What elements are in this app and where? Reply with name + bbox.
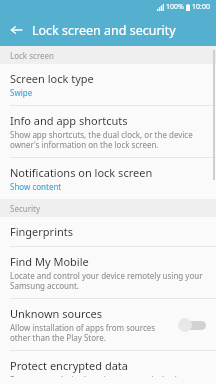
staticText: Lock screen	[10, 50, 55, 61]
staticText: 100%	[166, 2, 184, 12]
button[interactable]: Notifications on lock screen	[0, 158, 216, 199]
button[interactable]: Info and app shortcuts	[0, 106, 216, 157]
button[interactable]: Back	[0, 14, 32, 46]
staticText: Locate and control your device remotely …	[10, 270, 203, 291]
staticText: Unknown sources	[10, 306, 103, 321]
button[interactable]: Fingerprints	[0, 217, 216, 246]
staticText: Find My Mobile	[10, 254, 89, 269]
staticText: Screen lock type	[10, 71, 94, 86]
staticText: Fingerprints	[10, 224, 74, 239]
staticText: Lock screen and security	[32, 22, 176, 39]
button[interactable]: Unknown sources	[0, 299, 216, 350]
staticText: Swipe	[10, 87, 33, 98]
staticText: Protect your device by using a screen lo…	[10, 374, 190, 377]
staticText: 10:00	[192, 2, 210, 12]
staticText: Info and app shortcuts	[10, 113, 128, 128]
staticText: Allow installation of apps from sources …	[10, 322, 156, 343]
staticText: Security	[10, 203, 41, 214]
staticText: Notifications on lock screen	[10, 165, 153, 180]
button[interactable]: Unknown sources toggle	[178, 316, 208, 334]
button[interactable]: Find My Mobile	[0, 247, 216, 298]
staticText: Protect encrypted data	[10, 358, 128, 373]
button[interactable]: Screen lock type	[0, 64, 216, 105]
staticText: Show app shortcuts, the dual clock, or t…	[10, 129, 193, 150]
button[interactable]: Protect encrypted data	[0, 351, 216, 384]
staticText: Show content	[10, 181, 62, 192]
